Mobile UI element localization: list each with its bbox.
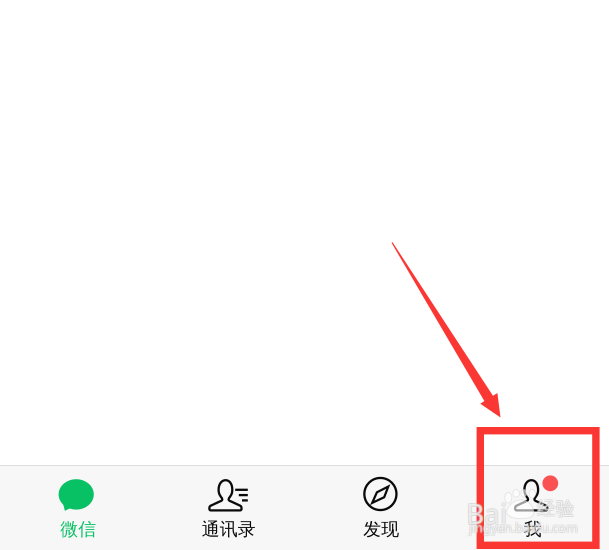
staticText: 经验 <box>536 496 574 519</box>
staticText: 我 <box>524 518 542 540</box>
staticText: jingyan.baidu.com <box>469 519 578 536</box>
staticText: 经验 <box>538 496 576 519</box>
button[interactable]: 发现 <box>304 465 456 550</box>
staticText: jingyan.baidu.com <box>470 518 579 535</box>
staticText: Bai <box>465 493 506 531</box>
button[interactable]: 微信 <box>0 465 152 550</box>
staticText: Bai <box>467 495 508 533</box>
staticText: Bai <box>465 495 506 533</box>
button[interactable]: 我 <box>457 465 609 550</box>
staticText: 微信 <box>60 518 96 540</box>
staticText: Bai <box>466 494 507 532</box>
staticText: jingyan.baidu.com <box>468 518 577 535</box>
staticText: Bai <box>467 493 508 531</box>
staticText: 经验 <box>537 497 575 520</box>
button[interactable]: 通讯录 <box>152 465 304 550</box>
staticText: jingyan.baidu.com <box>468 520 577 537</box>
staticText: 经验 <box>538 498 576 521</box>
staticText: jingyan.baidu.com <box>470 520 579 537</box>
staticText: 发现 <box>363 518 399 540</box>
staticText: 经验 <box>536 498 574 521</box>
staticText: 通讯录 <box>202 518 256 540</box>
